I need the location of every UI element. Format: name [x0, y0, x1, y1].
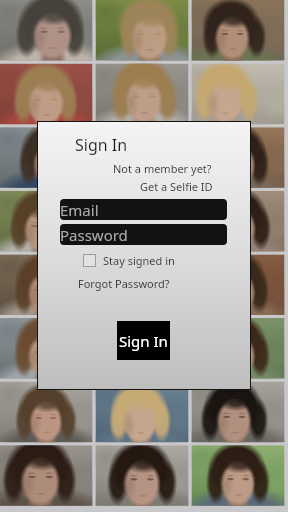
button[interactable]: Not a member yet?	[113, 161, 212, 176]
staticText: Sign In	[75, 134, 128, 156]
staticText: Sign In	[119, 331, 168, 351]
button[interactable]: Stay signed in	[83, 253, 175, 268]
button[interactable]: Password	[60, 224, 227, 245]
staticText: Stay signed in	[103, 253, 175, 268]
staticText: Email	[60, 200, 99, 220]
button[interactable]: Forgot Password?	[78, 276, 170, 291]
staticText: Password	[60, 225, 128, 245]
button[interactable]: Get a Selfie ID	[140, 179, 213, 194]
button[interactable]: Email	[60, 199, 227, 220]
button[interactable]: Sign In	[117, 321, 170, 360]
